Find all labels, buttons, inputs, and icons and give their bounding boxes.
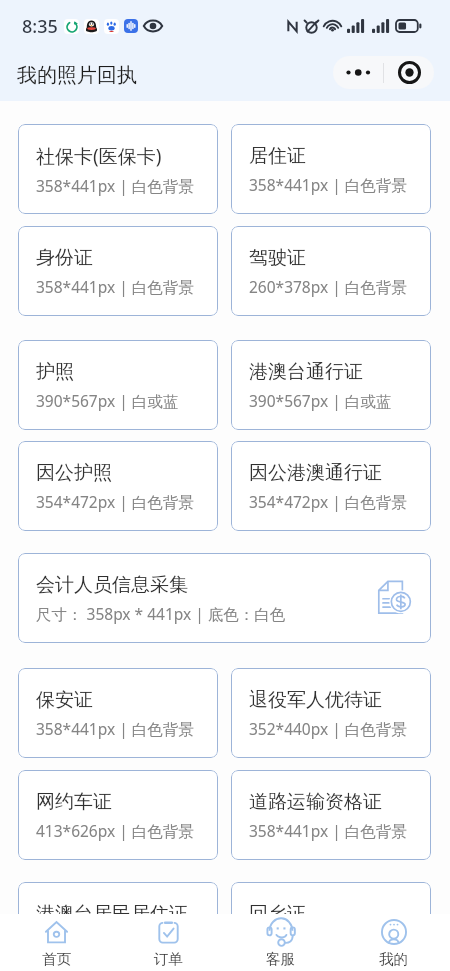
button[interactable]: 退役军人优待证 <box>231 668 431 758</box>
staticText: 会计人员信息采集 <box>36 573 188 597</box>
staticText: 港澳台居民居住证 <box>36 902 188 914</box>
button[interactable]: More options <box>333 56 383 89</box>
staticText: 354*472px | 白色背景 <box>36 491 194 512</box>
staticText: 港澳台通行证 <box>249 360 363 384</box>
staticText: 尺寸： 358px * 441px | 底色：白色 <box>36 603 286 624</box>
staticText: 260*378px | 白色背景 <box>249 276 407 297</box>
staticText: 352*440px | 白色背景 <box>249 718 407 739</box>
button[interactable]: 身份证 <box>18 226 218 316</box>
staticText: 358*441px | 白色背景 <box>36 276 194 297</box>
staticText: 居住证 <box>249 144 306 168</box>
staticText: 社保卡(医保卡) <box>36 143 162 169</box>
button[interactable]: 我的 <box>337 914 450 970</box>
button[interactable]: 回乡证 <box>231 882 431 914</box>
button[interactable]: 港澳台通行证 <box>231 340 431 430</box>
button[interactable]: 网约车证 <box>18 770 218 860</box>
staticText: 413*626px | 白色背景 <box>36 820 194 841</box>
button[interactable]: 会计人员信息采集 <box>18 553 431 643</box>
staticText: 我的 <box>379 950 408 968</box>
staticText: 订单 <box>154 950 183 968</box>
button[interactable]: 因公护照 <box>18 441 218 531</box>
button[interactable]: 驾驶证 <box>231 226 431 316</box>
staticText: 道路运输资格证 <box>249 790 382 814</box>
staticText: 因公港澳通行证 <box>249 461 382 485</box>
staticText: 保安证 <box>36 688 93 712</box>
button[interactable]: 居住证 <box>231 124 431 214</box>
staticText: 390*567px | 白或蓝 <box>249 390 392 411</box>
button[interactable]: 护照 <box>18 340 218 430</box>
button[interactable]: Close mini program <box>384 56 434 89</box>
staticText: 390*567px | 白或蓝 <box>36 390 179 411</box>
staticText: 退役军人优待证 <box>249 688 382 712</box>
staticText: 358*441px | 白色背景 <box>249 820 407 841</box>
staticText: 回乡证 <box>249 902 306 914</box>
button[interactable]: 港澳台居民居住证 <box>18 882 218 914</box>
staticText: 客服 <box>266 950 295 968</box>
staticText: 8:35 <box>22 14 58 39</box>
button[interactable]: 社保卡(医保卡) <box>18 124 218 214</box>
staticText: 358*441px | 白色背景 <box>249 174 407 195</box>
button[interactable]: 订单 <box>112 914 224 970</box>
staticText: 首页 <box>42 950 71 968</box>
button[interactable]: 保安证 <box>18 668 218 758</box>
button[interactable]: 首页 <box>0 914 112 970</box>
button[interactable]: 道路运输资格证 <box>231 770 431 860</box>
staticText: 网约车证 <box>36 790 112 814</box>
staticText: 358*441px | 白色背景 <box>36 175 194 196</box>
staticText: 驾驶证 <box>249 246 306 270</box>
button[interactable]: 客服 <box>224 914 337 970</box>
staticText: 身份证 <box>36 246 93 270</box>
staticText: 护照 <box>36 360 74 384</box>
staticText: 因公护照 <box>36 461 112 485</box>
staticText: 354*472px | 白色背景 <box>249 491 407 512</box>
button[interactable]: 因公港澳通行证 <box>231 441 431 531</box>
staticText: 358*441px | 白色背景 <box>36 718 194 739</box>
staticText: 我的照片回执 <box>17 63 137 88</box>
